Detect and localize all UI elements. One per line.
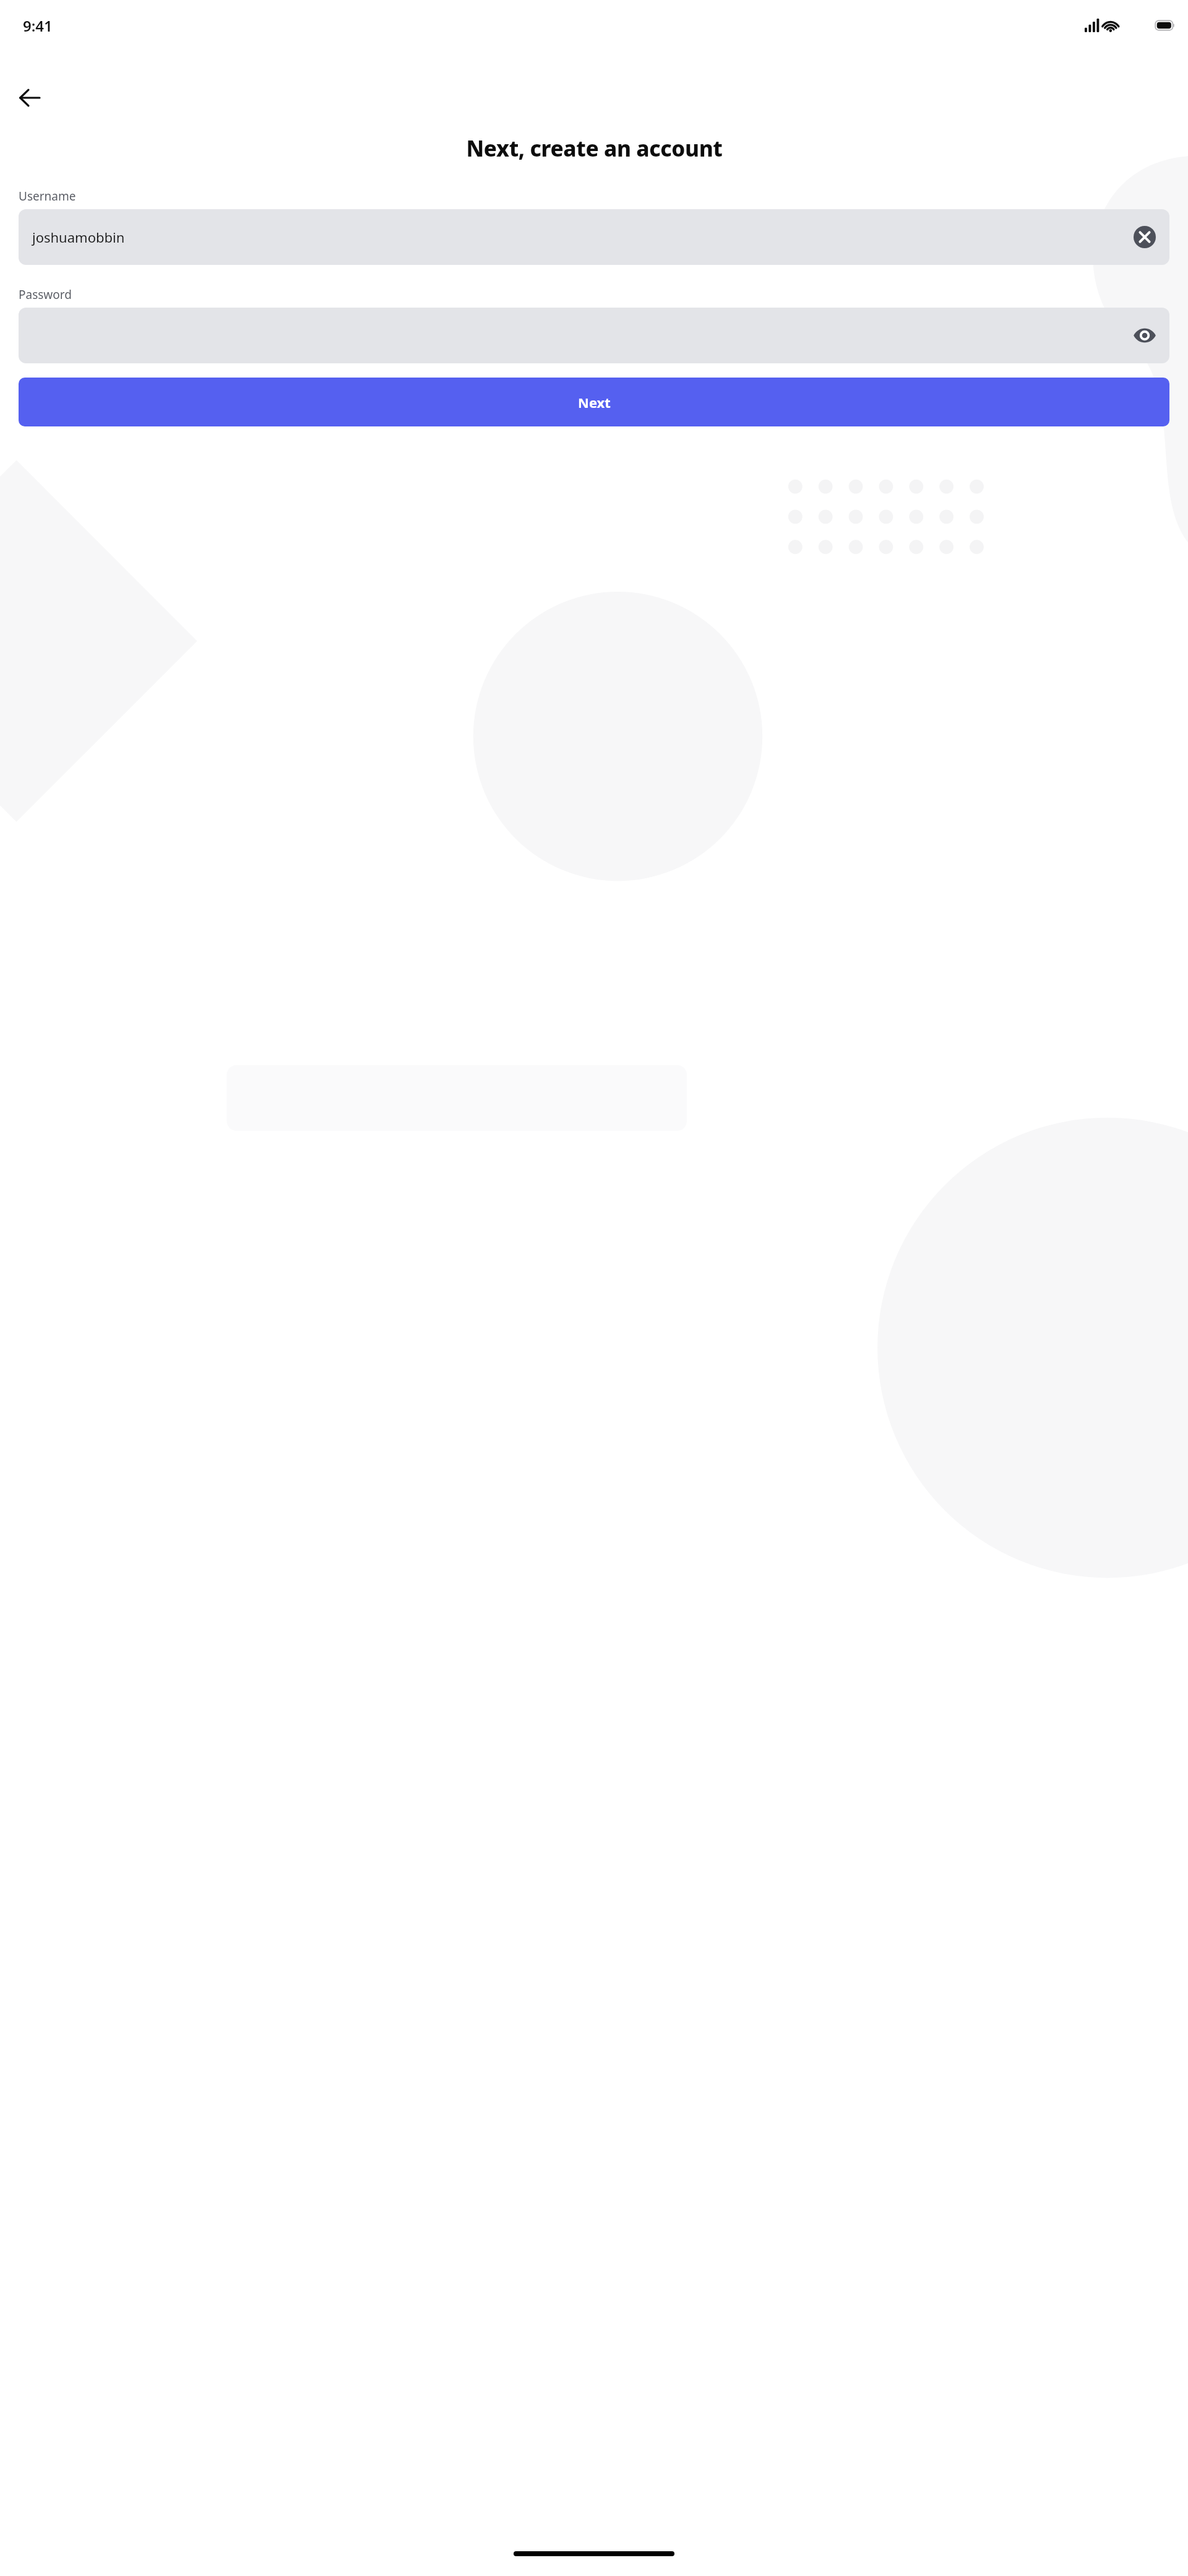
staticText: Password (19, 287, 72, 303)
button[interactable]: joshuamobbin (19, 209, 1169, 265)
button[interactable]: Next (19, 378, 1169, 426)
staticText: Next (578, 393, 611, 412)
staticText: joshuamobbin (32, 228, 125, 246)
button[interactable]: Clear username (1129, 221, 1161, 253)
button[interactable]: Back (12, 80, 47, 115)
staticText: Username (19, 188, 76, 204)
button[interactable]: Show password (1129, 319, 1161, 352)
staticText: Next, create an account (466, 134, 723, 163)
button[interactable]: Show password (19, 308, 1169, 363)
staticText: 9:41 (23, 15, 53, 36)
